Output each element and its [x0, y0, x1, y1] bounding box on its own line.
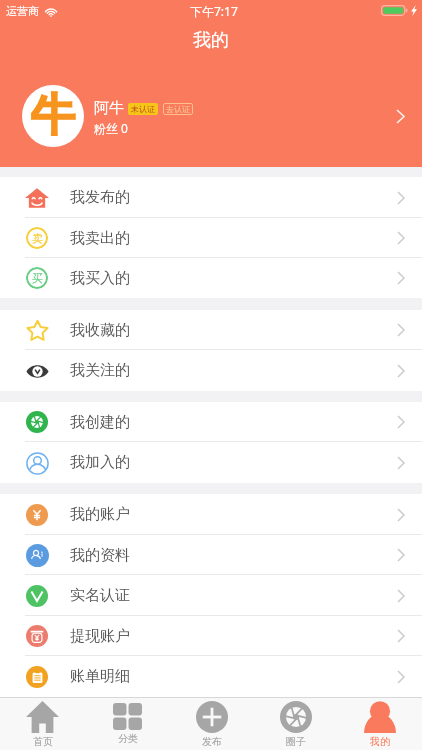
button[interactable]: 我加入的 [0, 442, 422, 483]
staticText: 粉丝 0 [94, 120, 128, 136]
button[interactable]: 我的资料 [0, 535, 422, 575]
button[interactable]: 卖 [0, 218, 422, 258]
button[interactable]: 我关注的 [0, 350, 422, 391]
staticText: 我的 [193, 29, 229, 52]
staticText: 运营商 [6, 4, 39, 18]
staticText: 我卖出的 [70, 229, 130, 248]
button[interactable]: 实名认证 [0, 575, 422, 616]
button[interactable]: 我发布的 [0, 177, 422, 218]
staticText: 发布 [202, 735, 222, 748]
staticText: 下午7:17 [190, 3, 238, 19]
button[interactable]: 圈子 [254, 698, 338, 750]
button[interactable]: 我创建的 [0, 402, 422, 442]
staticText: 分类 [118, 732, 138, 745]
button[interactable]: 我的 [338, 698, 422, 750]
staticText: 卖 [32, 231, 43, 245]
staticText: 未认证 [131, 104, 155, 114]
button[interactable]: 我的账户 [0, 494, 422, 535]
staticText: 我加入的 [70, 453, 130, 472]
button[interactable]: 首页 [0, 698, 85, 750]
staticText: 我发布的 [70, 188, 130, 207]
button[interactable]: 买 [0, 258, 422, 298]
staticText: 首页 [33, 735, 53, 748]
staticText: 我的资料 [70, 546, 130, 565]
staticText: 我关注的 [70, 361, 130, 380]
staticText: 我的账户 [70, 505, 130, 524]
staticText: 我的 [370, 735, 390, 748]
button[interactable]: 发布 [170, 698, 254, 750]
button[interactable]: 账单明细 [0, 656, 422, 697]
staticText: 提现账户 [70, 627, 130, 646]
staticText: 买 [32, 271, 43, 285]
staticText: 我创建的 [70, 413, 130, 432]
button[interactable]: 提现账户 [0, 616, 422, 656]
staticText: 我收藏的 [70, 321, 130, 340]
staticText: 我买入的 [70, 269, 130, 288]
button[interactable]: 分类 [85, 698, 170, 750]
button[interactable]: 我收藏的 [0, 310, 422, 350]
staticText: 账单明细 [70, 667, 130, 686]
staticText: 圈子 [286, 735, 306, 748]
button[interactable]: 牛 [0, 68, 422, 164]
staticText: 阿牛 [94, 99, 124, 118]
staticText: 去认证 [166, 104, 190, 114]
staticText: 牛 [31, 88, 75, 143]
staticText: 实名认证 [70, 586, 130, 605]
